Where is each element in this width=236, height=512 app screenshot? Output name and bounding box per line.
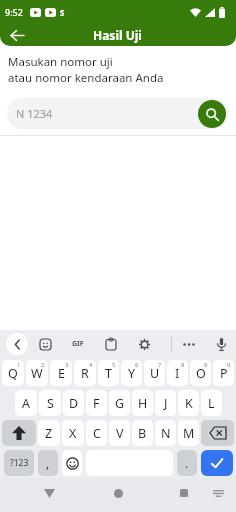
button[interactable] <box>6 333 28 355</box>
staticText: O <box>196 365 206 382</box>
button[interactable]: N 1234 <box>7 98 228 129</box>
button[interactable] <box>110 485 126 501</box>
staticText: 7 <box>158 361 162 369</box>
button[interactable]: R <box>74 360 96 386</box>
staticText: X <box>69 425 77 442</box>
button[interactable]: V <box>109 420 130 446</box>
button[interactable] <box>62 450 82 476</box>
button[interactable] <box>101 330 121 358</box>
staticText: W <box>31 365 43 382</box>
button[interactable] <box>176 485 192 501</box>
button[interactable]: E <box>50 360 72 386</box>
button[interactable] <box>198 100 226 128</box>
staticText: V <box>116 425 124 442</box>
button[interactable]: M <box>178 420 199 446</box>
staticText: Z <box>45 425 53 442</box>
staticText: I <box>175 365 180 382</box>
button[interactable]: I <box>167 360 188 386</box>
staticText: C <box>93 425 101 442</box>
staticText: M <box>183 425 195 442</box>
staticText: T <box>105 365 112 382</box>
staticText: 3 <box>65 361 69 369</box>
button[interactable]: O <box>190 360 211 386</box>
staticText: Masukan nomor uji <box>8 54 113 70</box>
staticText: . <box>185 455 189 471</box>
button[interactable]: C <box>86 420 107 446</box>
button[interactable]: Z <box>38 420 60 446</box>
staticText: D <box>69 395 79 412</box>
staticText: ?123 <box>10 457 29 469</box>
staticText: Y <box>128 365 136 382</box>
staticText: 1 <box>17 361 21 369</box>
staticText: N <box>161 425 171 442</box>
button[interactable] <box>134 330 154 358</box>
button[interactable]: W <box>26 360 48 386</box>
button[interactable] <box>211 330 231 358</box>
staticText: H <box>138 395 148 412</box>
button[interactable]: B <box>132 420 153 446</box>
button[interactable]: L <box>201 390 222 416</box>
staticText: S <box>60 7 65 18</box>
button[interactable]: N <box>155 420 176 446</box>
button[interactable]: T <box>98 360 119 386</box>
button[interactable]: G <box>109 390 130 416</box>
button[interactable] <box>35 330 55 358</box>
button[interactable] <box>179 330 199 358</box>
button[interactable]: D <box>63 390 84 416</box>
staticText: J <box>164 395 168 412</box>
staticText: 6 <box>135 361 139 369</box>
button[interactable] <box>201 420 234 446</box>
button[interactable]: Y <box>121 360 142 386</box>
staticText: A <box>22 395 30 412</box>
staticText: L <box>208 395 215 412</box>
button[interactable]: Q <box>2 360 24 386</box>
staticText: 8 <box>181 361 185 369</box>
button[interactable]: J <box>155 390 176 416</box>
button[interactable] <box>2 420 36 446</box>
button[interactable]: GIF <box>68 330 88 358</box>
staticText: K <box>185 395 193 412</box>
staticText: G <box>115 395 125 412</box>
button[interactable]: . <box>177 450 197 476</box>
button[interactable]: U <box>144 360 165 386</box>
button[interactable]: X <box>62 420 84 446</box>
button[interactable]: S <box>39 390 61 416</box>
staticText: , <box>46 455 50 471</box>
button[interactable]: A <box>15 390 37 416</box>
staticText: Hasil Uji <box>93 27 142 43</box>
button[interactable]: K <box>178 390 199 416</box>
button[interactable]: , <box>38 450 58 476</box>
staticText: 9 <box>204 361 208 369</box>
staticText: P <box>220 365 228 382</box>
staticText: 4 <box>89 361 93 369</box>
staticText: Q <box>8 365 18 382</box>
button[interactable]: H <box>132 390 153 416</box>
staticText: atau nomor kendaraan Anda <box>8 70 164 86</box>
staticText: F <box>93 395 100 412</box>
staticText: 9:52 <box>5 6 23 18</box>
staticText: E <box>58 365 65 382</box>
button[interactable] <box>201 450 233 476</box>
button[interactable]: F <box>86 390 107 416</box>
staticText: U <box>150 365 160 382</box>
staticText: R <box>81 365 89 382</box>
button[interactable] <box>4 24 30 46</box>
staticText: 2 <box>41 361 45 369</box>
button[interactable]: ?123 <box>4 450 34 476</box>
staticText: B <box>138 425 147 442</box>
staticText: N 1234 <box>16 106 53 121</box>
button[interactable]: P <box>213 360 234 386</box>
staticText: S <box>47 395 54 412</box>
button[interactable] <box>210 485 226 501</box>
button[interactable] <box>41 485 57 501</box>
staticText: 5 <box>112 361 116 369</box>
staticText: 0 <box>227 361 231 369</box>
staticText: GIF <box>72 339 84 349</box>
